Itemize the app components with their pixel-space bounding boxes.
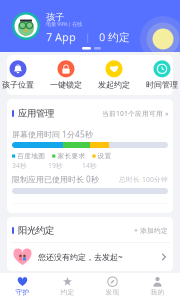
staticText: 设置 bbox=[98, 152, 112, 160]
staticText: 19秒 bbox=[48, 161, 63, 170]
staticText: 孩子位置 bbox=[2, 80, 34, 90]
staticText: 限制应用已使用时长 0秒 bbox=[12, 174, 99, 185]
staticText: 时间管理 bbox=[146, 80, 178, 90]
staticText: 14秒 bbox=[82, 161, 97, 170]
button[interactable]: 7 App bbox=[46, 30, 76, 44]
staticText: | bbox=[85, 31, 90, 43]
button[interactable]: 当前101个应用可用 » bbox=[102, 109, 168, 118]
button[interactable]: 守护 bbox=[0, 273, 45, 299]
staticText: + 添加约定 bbox=[134, 226, 168, 235]
button[interactable]: 一键锁定 bbox=[46, 61, 86, 89]
staticText: 家长要求 bbox=[57, 152, 85, 160]
staticText: 34秒 bbox=[12, 161, 27, 170]
button[interactable]: 孩子位置 bbox=[0, 61, 38, 89]
staticText: 应用管理 bbox=[18, 108, 54, 119]
staticText: 发现 bbox=[105, 288, 119, 296]
staticText: 孩子 bbox=[46, 11, 64, 23]
button[interactable]: 您还没有约定，去发起~ bbox=[13, 243, 167, 271]
staticText: 一键锁定 bbox=[50, 80, 82, 90]
staticText: 约定 bbox=[60, 288, 74, 296]
staticText: 百度地图 bbox=[17, 152, 45, 160]
staticText: 0 约定 bbox=[99, 30, 130, 44]
button[interactable]: 0 约定 bbox=[99, 30, 130, 44]
button[interactable]: 约定 bbox=[45, 273, 90, 299]
staticText: 当前101个应用可用 » bbox=[102, 109, 168, 118]
staticText: 守护 bbox=[15, 288, 29, 296]
staticText: 阳光约定 bbox=[18, 225, 54, 236]
staticText: 发起约定 bbox=[98, 80, 130, 90]
staticText: 7 App bbox=[46, 30, 76, 44]
button[interactable]: 时间管理 bbox=[142, 61, 180, 89]
button[interactable]: 我的 bbox=[135, 273, 180, 299]
staticText: 总时长 100分钟 bbox=[119, 175, 168, 184]
staticText: 我的 bbox=[150, 288, 164, 296]
button[interactable]: 发现 bbox=[90, 273, 135, 299]
button[interactable]: + 添加约定 bbox=[134, 226, 168, 235]
staticText: 电量 99% | 在线 bbox=[46, 20, 82, 28]
button[interactable]: 发起约定 bbox=[94, 61, 134, 89]
staticText: 您还没有约定，去发起~ bbox=[38, 252, 123, 262]
staticText: 屏幕使用时间 1分45秒 bbox=[12, 129, 93, 140]
